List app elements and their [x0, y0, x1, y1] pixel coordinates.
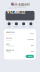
- button[interactable]: Payroll: [4, 36, 36, 42]
- staticText: -24.10: [30, 32, 34, 34]
- staticText: Coffee: [6, 51, 11, 53]
- staticText: •••• 8421: [7, 22, 15, 24]
- button[interactable]: See all: [26, 55, 34, 58]
- staticText: Transport: [6, 45, 14, 47]
- staticText: Total balance: [7, 7, 16, 9]
- staticText: -4.20: [31, 50, 34, 52]
- staticText: VISA: [30, 22, 33, 24]
- staticText: Request: [13, 26, 19, 28]
- button[interactable]: Request: [13, 22, 20, 28]
- staticText: Cards: [21, 26, 26, 28]
- staticText: $12,480.22: [7, 9, 25, 14]
- staticText: Payroll: [6, 37, 11, 39]
- button[interactable]: Uber: [4, 42, 36, 48]
- button[interactable]: Send: [5, 22, 13, 28]
- button[interactable]: Whole Foods: [4, 30, 36, 36]
- staticText: Income: [6, 39, 11, 41]
- staticText: Updated just now: [14, 6, 25, 8]
- staticText: Main account: [10, 3, 29, 6]
- staticText: -8.50: [31, 44, 34, 46]
- button[interactable]: Cards: [20, 22, 27, 28]
- staticText: More: [29, 26, 33, 28]
- staticText: Uber: [6, 43, 10, 45]
- staticText: Send: [7, 26, 11, 28]
- button[interactable]: More: [27, 22, 34, 28]
- staticText: Groceries: [6, 33, 14, 35]
- staticText: +2,400.00: [27, 38, 34, 40]
- staticText: Whole Foods: [6, 31, 15, 33]
- button[interactable]: Blue Bottle: [4, 48, 36, 54]
- staticText: See all: [28, 55, 32, 57]
- staticText: Blue Bottle: [6, 49, 14, 51]
